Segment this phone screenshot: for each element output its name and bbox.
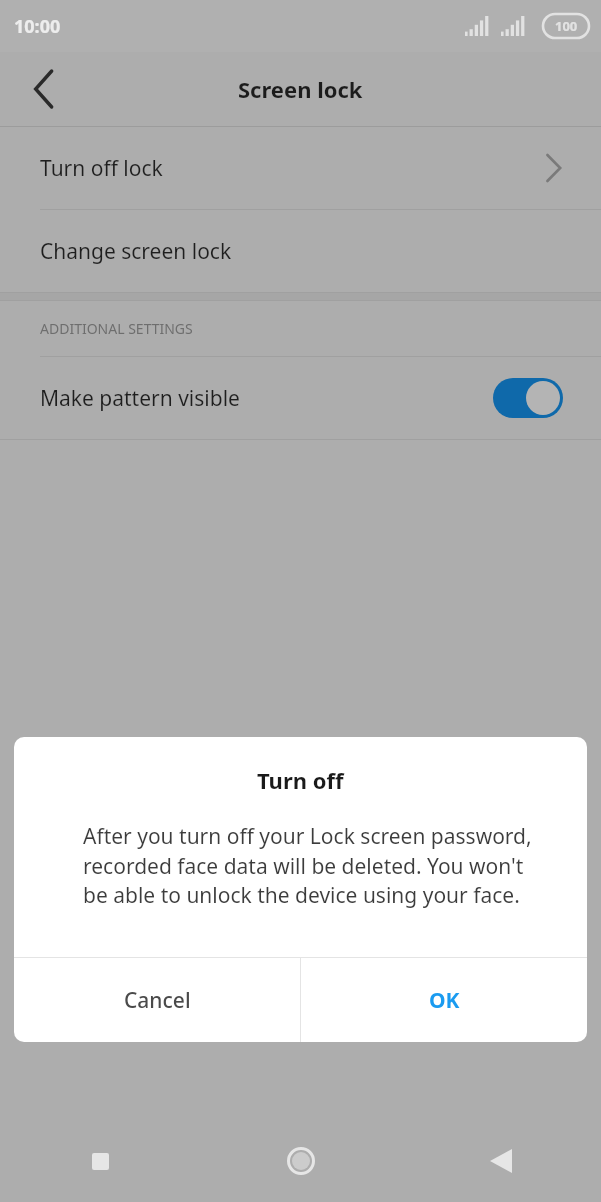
button[interactable]: Turn off lock xyxy=(0,127,601,209)
button[interactable]: Back xyxy=(22,67,66,111)
button[interactable]: OK xyxy=(301,958,587,1042)
staticText: 10:00 xyxy=(14,14,61,39)
button[interactable]: Cancel xyxy=(14,958,300,1042)
button[interactable]: Home xyxy=(201,1120,401,1202)
button[interactable]: Back xyxy=(401,1120,601,1202)
staticText: Cancel xyxy=(124,986,191,1015)
staticText: Screen lock xyxy=(238,74,363,104)
staticText: Turn off xyxy=(257,765,344,795)
button[interactable]: Change screen lock xyxy=(0,210,601,292)
button[interactable]: Recent apps xyxy=(0,1120,201,1202)
staticText: Turn off lock xyxy=(40,154,163,183)
staticText: After you turn off your Lock screen pass… xyxy=(83,822,547,909)
button[interactable]: Make pattern visible xyxy=(0,357,601,439)
staticText: Change screen lock xyxy=(40,237,232,266)
staticText: ADDITIONAL SETTINGS xyxy=(40,319,193,338)
staticText: Make pattern visible xyxy=(40,384,240,413)
staticText: OK xyxy=(429,986,460,1015)
button[interactable]: Make pattern visible toggle xyxy=(493,378,563,418)
staticText: 100 xyxy=(555,17,578,35)
